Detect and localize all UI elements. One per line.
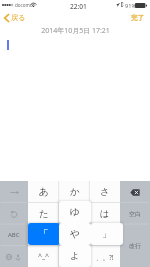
staticText: た	[39, 208, 49, 220]
staticText: 「	[39, 228, 49, 240]
button[interactable]: Space	[120, 203, 150, 225]
button[interactable]: Switch to ABC	[0, 224, 28, 246]
button[interactable]: ^_^	[28, 246, 59, 267]
button[interactable]: Dictation	[15, 254, 21, 260]
button[interactable]: 戻る	[0, 10, 31, 25]
staticText: ABC	[8, 231, 20, 239]
staticText: か	[70, 186, 80, 198]
button[interactable]: よ	[59, 245, 91, 267]
button[interactable]: 、。?!	[89, 246, 120, 267]
staticText: 91%	[125, 2, 137, 10]
staticText: docomo	[15, 2, 33, 8]
button[interactable]: Keyboard and dictation	[0, 246, 28, 267]
button[interactable]: か	[59, 181, 90, 203]
button[interactable]: さ	[89, 181, 120, 203]
staticText: 」	[102, 228, 112, 240]
button[interactable]: 」	[91, 223, 123, 245]
button[interactable]: 完了	[126, 11, 150, 25]
button[interactable]: Undo	[0, 203, 28, 225]
button[interactable]: Delete	[120, 181, 150, 203]
staticText: 戻る	[11, 13, 26, 22]
staticText: ゆ	[70, 206, 80, 218]
staticText: や	[70, 228, 80, 240]
button[interactable]: や	[59, 223, 91, 245]
button[interactable]: あ	[28, 181, 59, 203]
button[interactable]: Return	[120, 224, 150, 267]
staticText: よ	[70, 250, 80, 262]
button[interactable]: Switch keyboard	[6, 254, 12, 260]
staticText: 空白	[129, 210, 141, 218]
button[interactable]: た	[28, 203, 59, 225]
staticText: 、。?!	[96, 253, 114, 262]
staticText: 完了	[131, 14, 145, 22]
staticText: さ	[100, 186, 110, 198]
staticText: ^_^	[38, 252, 50, 262]
button[interactable]: Next candidate	[0, 181, 28, 203]
staticText: は	[100, 208, 110, 220]
button[interactable]: ゆ	[59, 201, 91, 223]
staticText: 改行	[129, 242, 141, 250]
staticText: 2014年10月5日 17:21	[41, 26, 110, 36]
staticText: あ	[39, 186, 49, 198]
staticText: 22:01	[70, 2, 87, 11]
button[interactable]: は	[89, 203, 120, 225]
button[interactable]: 「	[28, 223, 60, 245]
